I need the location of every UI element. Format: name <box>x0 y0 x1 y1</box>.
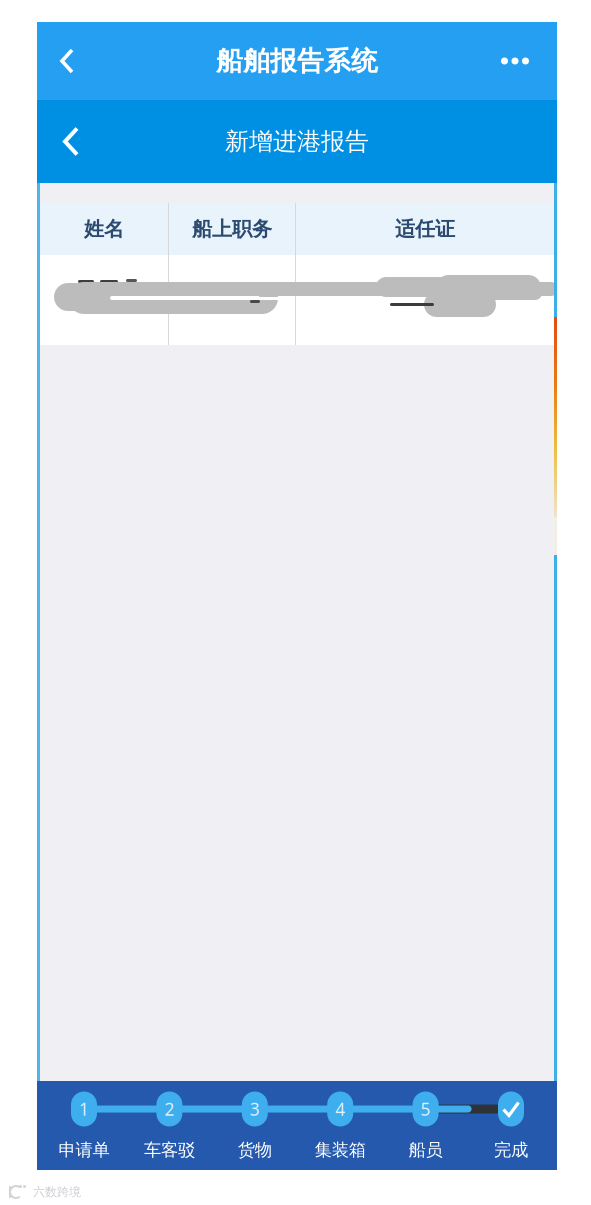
staticText: 六数跨境 <box>33 1185 81 1199</box>
staticText: 船舶报告系统 <box>216 45 378 77</box>
button[interactable]: 1 <box>41 1081 127 1170</box>
staticText: 1 <box>79 1097 89 1120</box>
button[interactable]: 5 <box>383 1081 468 1170</box>
staticText: 货物 <box>238 1139 272 1161</box>
staticText: 姓名 <box>84 217 124 241</box>
button[interactable]: 2 <box>127 1081 212 1170</box>
staticText: 5 <box>421 1097 431 1120</box>
button[interactable]: 完成 <box>468 1081 554 1170</box>
staticText: 新增进港报告 <box>225 127 369 156</box>
button[interactable]: Back <box>37 22 97 100</box>
button[interactable]: 4 <box>297 1081 383 1170</box>
staticText: 4 <box>335 1097 345 1120</box>
staticText: 3 <box>250 1097 260 1120</box>
staticText: 申请单 <box>58 1139 109 1161</box>
staticText: 集装箱 <box>315 1139 366 1161</box>
staticText: 船员 <box>409 1139 443 1161</box>
staticText: 适任证 <box>395 217 455 241</box>
staticText: 完成 <box>494 1139 528 1161</box>
staticText: 2 <box>164 1097 174 1120</box>
button[interactable]: 3 <box>212 1081 297 1170</box>
button[interactable]: Back <box>37 100 105 183</box>
button[interactable]: More options <box>473 22 557 100</box>
staticText: 船上职务 <box>192 217 272 241</box>
staticText: 车客驳 <box>144 1139 195 1161</box>
